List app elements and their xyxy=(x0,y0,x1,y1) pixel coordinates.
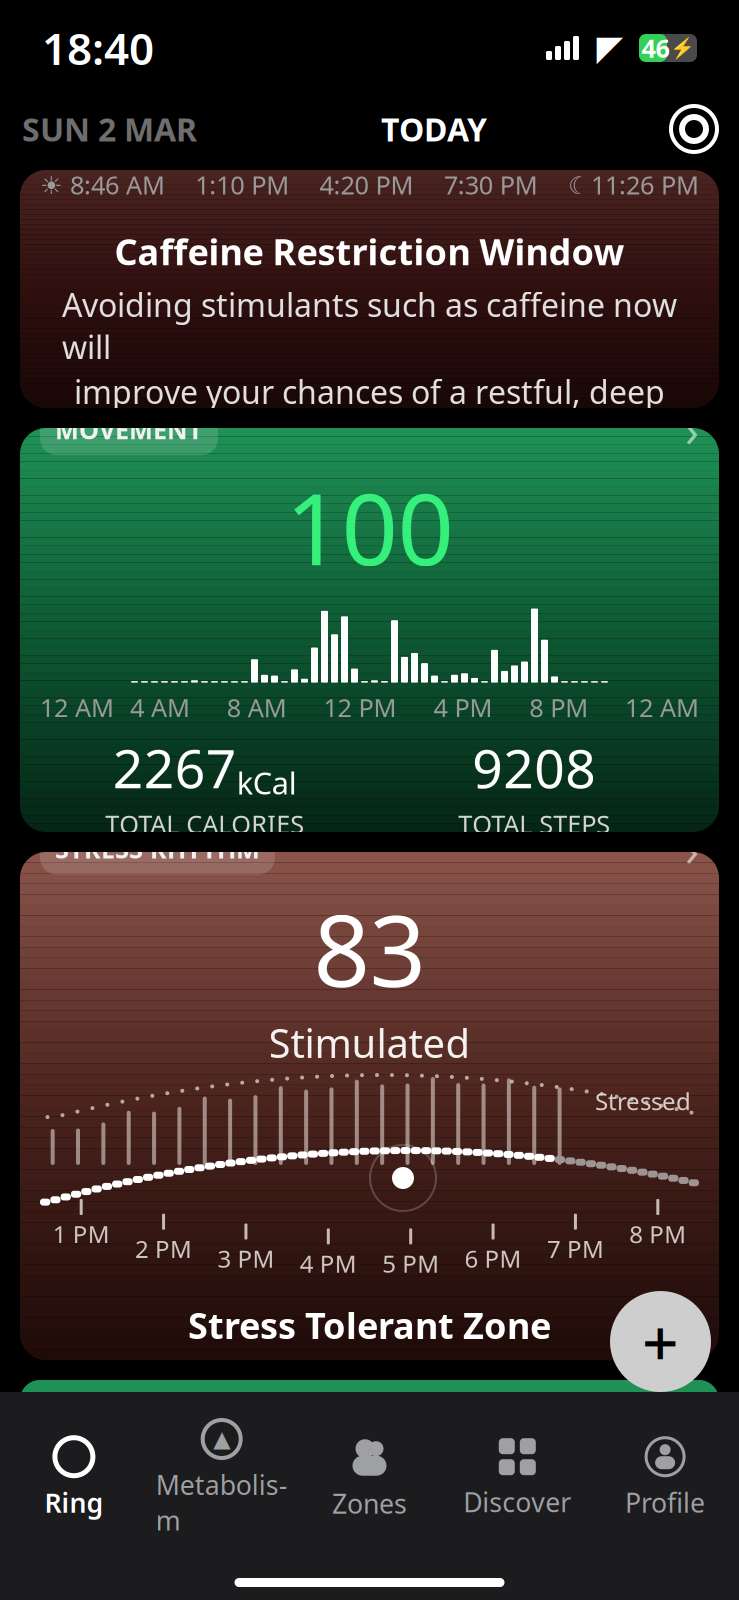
staticText: Avoiding stimulants such as caffeine now… xyxy=(62,283,677,368)
staticText: TODAY xyxy=(381,108,487,150)
button[interactable]: Discover xyxy=(443,1428,591,1530)
staticText: MOVEMENT xyxy=(55,413,203,446)
staticText: 7 PM xyxy=(547,1233,604,1265)
staticText: 12 AM xyxy=(625,691,699,724)
staticText: TOTAL STEPS xyxy=(458,807,610,841)
staticText: 6 PM xyxy=(465,1242,522,1274)
button[interactable]: Add entry xyxy=(610,1291,711,1392)
staticText: 1 PM xyxy=(53,1218,110,1250)
button[interactable]: Zones xyxy=(296,1427,443,1531)
button[interactable]: ▾ xyxy=(20,170,719,408)
button[interactable]: STRESS RHYTHM xyxy=(20,852,719,1360)
staticText: 7:30 PM xyxy=(444,168,538,201)
staticText: 46 xyxy=(641,31,669,65)
staticText: ⚡ xyxy=(669,37,694,59)
staticText: Stimulated xyxy=(268,1016,470,1069)
staticText: 2 PM xyxy=(135,1233,192,1265)
button[interactable]: Activity ring summary xyxy=(671,106,717,152)
staticText: 4 AM xyxy=(130,691,190,724)
staticText: 4 PM xyxy=(433,691,492,724)
staticText: 4 PM xyxy=(300,1247,357,1279)
staticText: 5 PM xyxy=(382,1247,439,1279)
staticText: Mild stress is useful to boost creativit… xyxy=(85,1357,653,1399)
button[interactable]: ▲ xyxy=(148,1410,296,1548)
staticText: Stress Tolerant Zone xyxy=(188,1301,551,1349)
staticText: SUN 2 MAR xyxy=(22,108,197,150)
staticText: Profile xyxy=(625,1485,705,1520)
staticText: 83 xyxy=(313,883,425,1014)
staticText: STRESS RHYTHM xyxy=(55,832,260,866)
staticText: ▾ xyxy=(479,118,496,157)
staticText: + xyxy=(642,1299,679,1384)
staticText: › xyxy=(685,819,699,879)
staticText: Metabolism xyxy=(156,1467,288,1538)
staticText: TOTAL CALORIES xyxy=(105,807,304,841)
staticText: 8 PM xyxy=(529,691,588,724)
staticText: 2267 xyxy=(113,732,237,803)
staticText: 12 PM xyxy=(324,691,397,724)
staticText: improve your chances of a restful, deep … xyxy=(74,370,665,455)
staticText: 12 AM xyxy=(40,691,114,724)
staticText: Ring xyxy=(44,1485,103,1520)
staticText: ☾11:26 PM xyxy=(568,168,699,201)
staticText: 8 PM xyxy=(629,1218,686,1250)
staticText: 100 xyxy=(285,461,453,592)
staticText: 18:40 xyxy=(42,19,154,77)
staticText: 4:20 PM xyxy=(319,168,413,201)
staticText: 1:10 PM xyxy=(195,168,289,201)
staticText: ◤ xyxy=(596,28,623,68)
staticText: › xyxy=(685,399,699,459)
staticText: ▲ xyxy=(213,1426,230,1452)
staticText: 3 PM xyxy=(217,1242,274,1274)
button[interactable]: Ring xyxy=(0,1428,148,1530)
button[interactable]: MOVEMENT xyxy=(20,428,719,832)
staticText: 8 AM xyxy=(227,691,287,724)
staticText: Caffeine Restriction Window xyxy=(114,227,624,275)
staticText: Zones xyxy=(332,1486,407,1521)
button[interactable]: Profile xyxy=(591,1428,739,1530)
staticText: kCal xyxy=(237,762,297,803)
staticText: Stressed xyxy=(595,1085,691,1117)
button[interactable]: SUN 2 MAR xyxy=(22,108,197,150)
staticText: Discover xyxy=(463,1484,571,1520)
staticText: ☀ 8:46 AM xyxy=(40,168,165,201)
staticText: 9208 xyxy=(472,732,596,803)
